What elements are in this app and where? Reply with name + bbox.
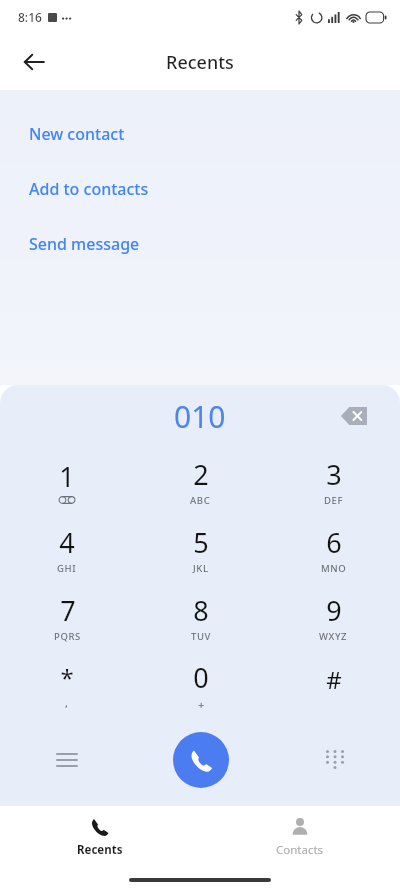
staticText: ,	[65, 695, 69, 710]
staticText: 6	[326, 524, 342, 561]
staticText: 4	[59, 524, 75, 561]
staticText: 8	[193, 592, 209, 629]
staticText: #	[326, 663, 342, 696]
staticText: Contacts	[276, 842, 324, 858]
staticText: PQRS	[54, 630, 81, 643]
staticText: GHI	[57, 562, 77, 575]
staticText: New contact	[29, 123, 125, 145]
button[interactable]: 3	[267, 447, 400, 515]
button[interactable]: Call	[173, 732, 229, 788]
button[interactable]: 8	[134, 583, 267, 651]
button[interactable]: Recents	[0, 806, 200, 868]
staticText: WXYZ	[319, 630, 348, 643]
button[interactable]: 2	[134, 447, 267, 515]
staticText: Send message	[29, 233, 140, 255]
button[interactable]: Send message	[29, 228, 400, 259]
button[interactable]: 4	[0, 515, 134, 583]
button[interactable]: #	[267, 651, 400, 719]
staticText: Recents	[77, 842, 123, 858]
button[interactable]: 6	[267, 515, 400, 583]
staticText: *	[60, 661, 74, 694]
button[interactable]: 7	[0, 583, 134, 651]
button[interactable]: *	[0, 651, 134, 719]
staticText: JKL	[193, 562, 209, 575]
button[interactable]: 1	[0, 447, 134, 515]
staticText: Recents	[166, 50, 234, 75]
staticText: Add to contacts	[29, 178, 149, 200]
staticText: MNO	[321, 562, 347, 575]
staticText: TUV	[191, 630, 211, 643]
staticText: 5	[193, 524, 209, 561]
button[interactable]: 0	[134, 651, 267, 719]
staticText: ABC	[190, 494, 211, 507]
button[interactable]: New contact	[29, 118, 400, 149]
button[interactable]: Dialpad	[310, 736, 358, 784]
staticText: 1	[59, 458, 75, 495]
staticText: 8:16	[18, 9, 42, 25]
button[interactable]: 5	[134, 515, 267, 583]
button[interactable]: Back	[12, 40, 56, 84]
button[interactable]: Add to contacts	[29, 173, 400, 204]
staticText: 2	[193, 456, 209, 493]
button[interactable]: Backspace	[332, 394, 376, 438]
staticText: 9	[326, 592, 342, 629]
staticText: 010	[174, 396, 226, 437]
staticText: 7	[60, 592, 76, 629]
staticText: +	[198, 697, 205, 712]
button[interactable]: 9	[267, 583, 400, 651]
staticText: 3	[326, 456, 342, 493]
staticText: DEF	[324, 494, 344, 507]
staticText: 0	[193, 659, 209, 696]
button[interactable]: Contacts	[200, 806, 400, 868]
button[interactable]: Call log	[43, 736, 91, 784]
